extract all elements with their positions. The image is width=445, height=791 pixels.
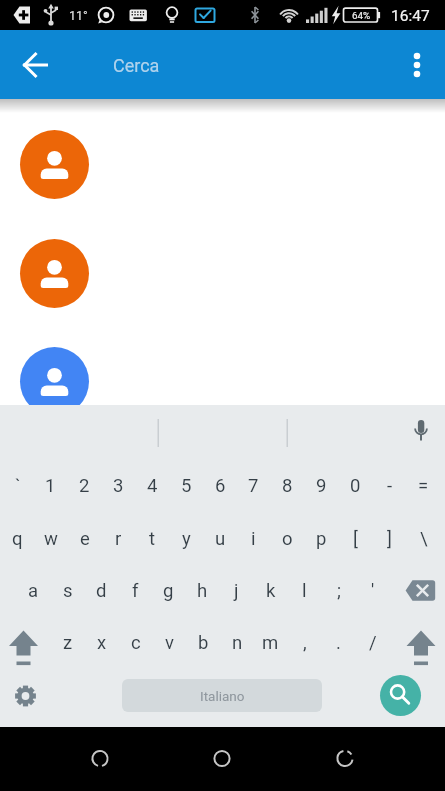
button[interactable]: 1 xyxy=(34,461,67,511)
button[interactable]: i xyxy=(237,514,270,564)
button[interactable]: 4 xyxy=(136,461,169,511)
staticText: l xyxy=(302,580,307,602)
staticText: y xyxy=(182,528,191,550)
staticText: b xyxy=(198,632,209,654)
staticText: ] xyxy=(387,528,392,550)
staticText: 1 xyxy=(45,475,56,497)
button[interactable]: f xyxy=(119,566,152,616)
button[interactable] xyxy=(320,733,370,785)
staticText: 64% xyxy=(352,10,371,21)
button[interactable]: ` xyxy=(1,461,34,511)
staticText: 8 xyxy=(282,475,293,497)
button[interactable]: n xyxy=(221,618,254,668)
button[interactable]: 7 xyxy=(237,461,270,511)
button[interactable]: \ xyxy=(407,514,440,564)
button[interactable] xyxy=(0,328,445,405)
button[interactable] xyxy=(398,408,444,454)
staticText: m xyxy=(262,632,279,654)
button[interactable] xyxy=(400,622,443,668)
staticText: ; xyxy=(337,580,341,602)
button[interactable]: [ xyxy=(339,514,372,564)
button[interactable]: o xyxy=(271,514,304,564)
button[interactable]: y xyxy=(170,514,203,564)
staticText: o xyxy=(282,528,293,550)
staticText: s xyxy=(63,580,73,602)
button[interactable] xyxy=(380,675,421,716)
staticText: ` xyxy=(15,475,21,497)
button[interactable]: w xyxy=(34,514,67,564)
button[interactable]: 6 xyxy=(204,461,237,511)
staticText: v xyxy=(165,632,174,654)
button[interactable]: p xyxy=(305,514,338,564)
staticText: e xyxy=(80,528,90,550)
staticText: = xyxy=(418,475,429,497)
staticText: . xyxy=(336,632,341,654)
button[interactable] xyxy=(395,39,439,91)
button[interactable] xyxy=(4,675,47,717)
button[interactable]: 5 xyxy=(170,461,203,511)
button[interactable]: 3 xyxy=(102,461,135,511)
staticText: 5 xyxy=(181,475,192,497)
staticText: z xyxy=(63,632,73,654)
staticText: f xyxy=(132,580,139,602)
button[interactable]: t xyxy=(136,514,169,564)
button[interactable]: h xyxy=(186,566,219,616)
staticText: / xyxy=(369,632,377,654)
button[interactable]: u xyxy=(204,514,237,564)
button[interactable]: 2 xyxy=(68,461,101,511)
staticText: a xyxy=(28,580,39,602)
staticText: 4 xyxy=(147,475,158,497)
button[interactable]: 8 xyxy=(271,461,304,511)
staticText: n xyxy=(232,632,243,654)
button[interactable]: m xyxy=(254,618,287,668)
button[interactable]: . xyxy=(322,618,355,668)
staticText: - xyxy=(387,475,393,497)
staticText: 0 xyxy=(350,475,361,497)
staticText: , xyxy=(303,632,307,654)
staticText: c xyxy=(131,632,141,654)
staticText: [ xyxy=(353,528,358,550)
button[interactable]: , xyxy=(288,618,321,668)
staticText: 16:47 xyxy=(391,7,430,25)
button[interactable]: / xyxy=(356,618,389,668)
button[interactable]: a xyxy=(17,566,50,616)
button[interactable] xyxy=(75,733,125,785)
staticText: 9 xyxy=(316,475,327,497)
button[interactable]: 0 xyxy=(339,461,372,511)
button[interactable] xyxy=(2,622,45,668)
button[interactable]: k xyxy=(254,566,287,616)
button[interactable] xyxy=(0,219,445,327)
staticText: j xyxy=(234,580,239,602)
staticText: \ xyxy=(420,528,428,550)
staticText: 7 xyxy=(248,475,259,497)
button[interactable]: - xyxy=(373,461,406,511)
button[interactable] xyxy=(10,39,62,91)
button[interactable]: ' xyxy=(356,566,389,616)
button[interactable]: c xyxy=(119,618,152,668)
button[interactable] xyxy=(0,110,445,218)
button[interactable] xyxy=(122,679,322,712)
button[interactable]: e xyxy=(68,514,101,564)
staticText: q xyxy=(12,528,23,550)
button[interactable]: = xyxy=(407,461,440,511)
button[interactable] xyxy=(400,570,443,612)
button[interactable]: l xyxy=(288,566,321,616)
staticText: x xyxy=(97,632,107,654)
button[interactable]: b xyxy=(187,618,220,668)
button[interactable]: ] xyxy=(373,514,406,564)
button[interactable]: q xyxy=(1,514,34,564)
button[interactable] xyxy=(197,733,247,785)
button[interactable]: v xyxy=(153,618,186,668)
button[interactable]: d xyxy=(85,566,118,616)
staticText: 3 xyxy=(113,475,124,497)
button[interactable]: z xyxy=(51,618,84,668)
button[interactable] xyxy=(70,39,370,91)
button[interactable]: g xyxy=(152,566,185,616)
button[interactable]: x xyxy=(85,618,118,668)
button[interactable]: 9 xyxy=(305,461,338,511)
button[interactable]: j xyxy=(220,566,253,616)
staticText: u xyxy=(215,528,226,550)
button[interactable]: r xyxy=(102,514,135,564)
button[interactable]: s xyxy=(51,566,84,616)
button[interactable]: ; xyxy=(322,566,355,616)
